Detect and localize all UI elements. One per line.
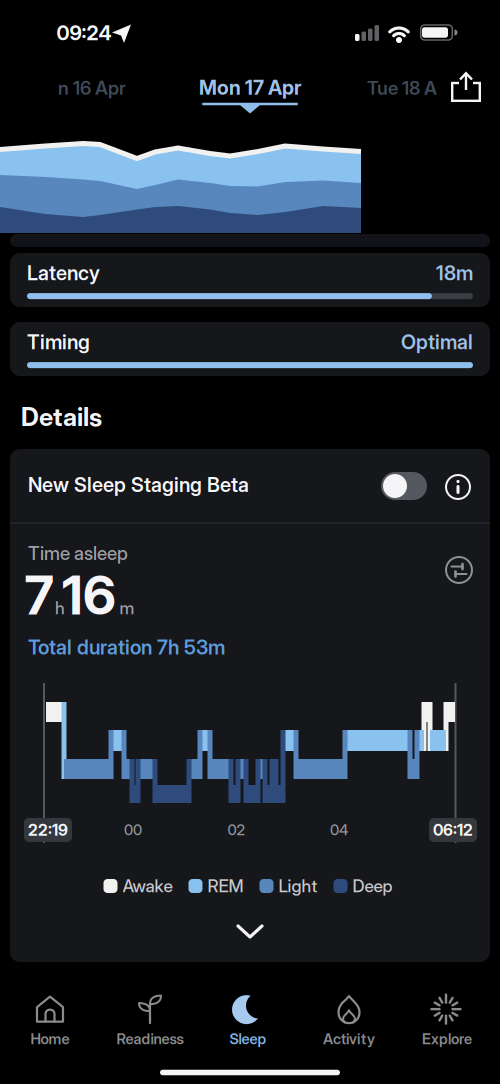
staticText: 7 <box>24 563 53 627</box>
staticText: Tue 18 A <box>367 77 437 99</box>
staticText: h <box>55 597 65 618</box>
button[interactable]: Tue 18 A <box>347 66 457 110</box>
staticText: Explore <box>422 1030 472 1048</box>
button[interactable]: Home <box>2 992 98 1050</box>
staticText: n 16 Apr <box>58 77 126 99</box>
staticText: Awake <box>122 875 172 896</box>
button[interactable]: Activity <box>301 992 397 1050</box>
staticText: 02 <box>227 821 244 839</box>
button[interactable]: Readiness <box>102 992 198 1050</box>
button[interactable]: Latency <box>10 253 490 307</box>
staticText: 06:12 <box>433 820 473 840</box>
button[interactable]: Explore <box>399 992 495 1050</box>
button[interactable]: Sleep <box>200 992 296 1050</box>
staticText: Home <box>30 1030 69 1048</box>
staticText: Details <box>21 401 102 432</box>
staticText: Optimal <box>401 330 473 354</box>
staticText: REM <box>207 875 243 896</box>
button[interactable]: Mon 17 Apr <box>180 63 320 119</box>
staticText: Latency <box>27 261 100 285</box>
staticText: Sleep <box>229 1030 266 1048</box>
staticText: 00 <box>124 821 142 839</box>
staticText: New Sleep Staging Beta <box>28 472 249 497</box>
button[interactable]: New Sleep Staging Beta <box>381 472 427 500</box>
staticText: Readiness <box>116 1030 183 1048</box>
staticText: 22:19 <box>28 820 68 840</box>
staticText: Time asleep <box>28 542 128 565</box>
button[interactable]: Adjust sleep time <box>445 556 473 584</box>
button[interactable]: n 16 Apr <box>37 66 147 110</box>
staticText: Mon 17 Apr <box>199 75 301 100</box>
staticText: Total duration 7h 53m <box>28 635 225 659</box>
staticText: 16 <box>62 563 116 627</box>
staticText: Timing <box>27 330 90 354</box>
staticText: Activity <box>323 1030 375 1048</box>
button[interactable]: Info <box>445 474 471 500</box>
staticText: 04 <box>330 821 348 839</box>
staticText: Light <box>278 875 317 896</box>
staticText: 09:24 <box>56 21 111 45</box>
staticText: Deep <box>352 875 392 896</box>
staticText: m <box>119 597 134 618</box>
staticText: 18m <box>436 261 473 285</box>
button[interactable]: Share <box>451 72 481 102</box>
button[interactable]: Expand <box>235 923 265 941</box>
button[interactable]: Timing <box>10 322 490 376</box>
